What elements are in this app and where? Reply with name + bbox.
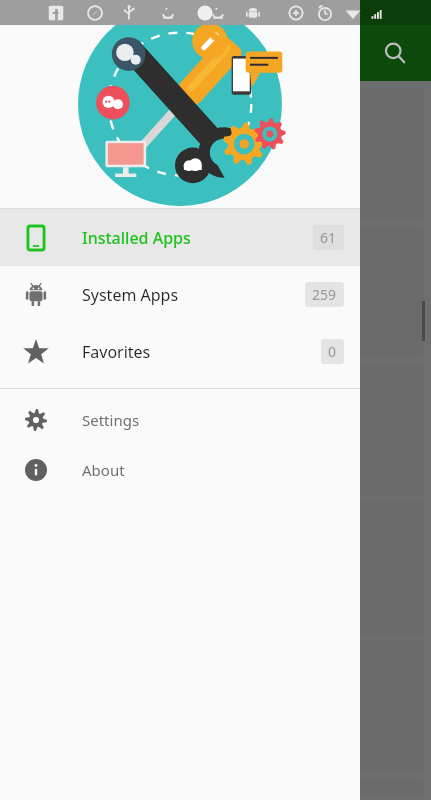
staticText: System Apps [82, 284, 179, 306]
button[interactable]: APK [8, 502, 423, 634]
staticText: 61 [320, 228, 337, 247]
button[interactable]: System Apps [0, 266, 360, 323]
staticText: Settings [82, 410, 140, 430]
button[interactable]: Settings [0, 395, 360, 445]
button[interactable]: Installed Apps [0, 209, 360, 266]
button[interactable]: Search [375, 33, 415, 73]
staticText: 0 [328, 342, 337, 361]
button[interactable]: APK [8, 640, 423, 772]
button[interactable]: APK [8, 226, 423, 358]
staticText: Installed Apps [82, 227, 191, 249]
button[interactable]: Favorites [0, 323, 360, 380]
staticText: APK [16, 420, 46, 440]
staticText: About [82, 460, 125, 480]
button[interactable]: APK [8, 778, 423, 797]
button[interactable]: About [0, 445, 360, 495]
button[interactable]: APK [8, 364, 423, 496]
staticText: 259 [312, 285, 337, 304]
button[interactable]: APK [8, 88, 423, 220]
staticText: Favorites [82, 341, 151, 363]
staticText: APK [16, 282, 46, 302]
